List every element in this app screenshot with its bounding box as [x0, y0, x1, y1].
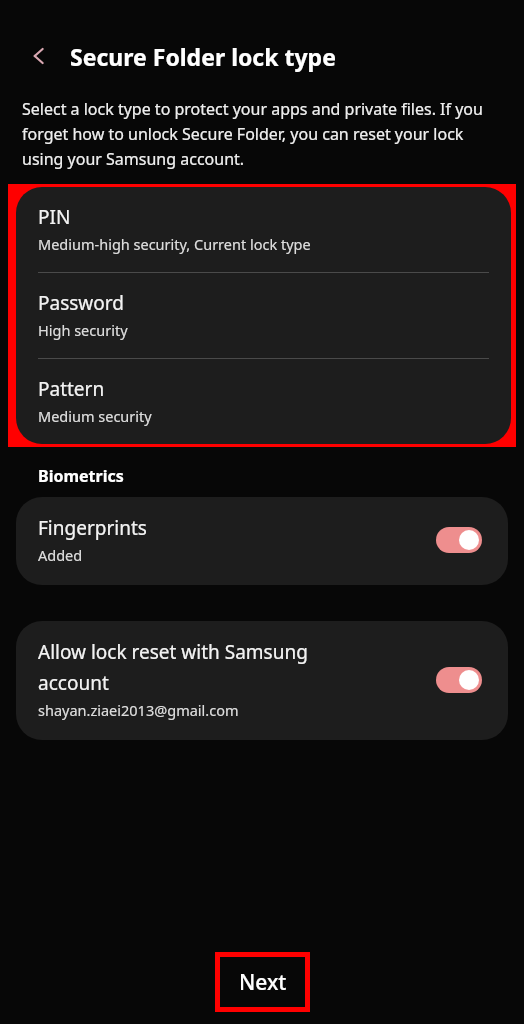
staticText: Medium security	[38, 406, 152, 426]
staticText: Select a lock type to protect your apps …	[22, 98, 502, 169]
staticText: Next	[239, 968, 287, 997]
button[interactable]: Pattern	[16, 359, 511, 444]
staticText: Fingerprints	[38, 515, 147, 541]
button[interactable]: Back	[26, 42, 54, 70]
staticText: Secure Folder lock type	[70, 41, 336, 72]
button[interactable]: Fingerprints	[16, 497, 508, 585]
button[interactable]: Next	[220, 957, 305, 1007]
staticText: Pattern	[38, 376, 105, 402]
staticText: Added	[38, 545, 83, 565]
button[interactable]: Toggle	[436, 667, 482, 693]
staticText: Password	[38, 290, 124, 316]
button[interactable]: Password	[16, 273, 511, 358]
staticText: PIN	[38, 204, 71, 230]
button[interactable]: Toggle	[436, 527, 482, 553]
button[interactable]: Allow lock reset with Samsung account	[16, 621, 508, 740]
button[interactable]: PIN	[16, 187, 511, 272]
staticText: High security	[38, 320, 128, 340]
staticText: Medium-high security, Current lock type	[38, 234, 311, 254]
staticText: Biometrics	[38, 465, 124, 487]
staticText: shayan.ziaei2013@gmail.com	[38, 700, 239, 720]
staticText: Allow lock reset with Samsung account	[38, 639, 338, 696]
